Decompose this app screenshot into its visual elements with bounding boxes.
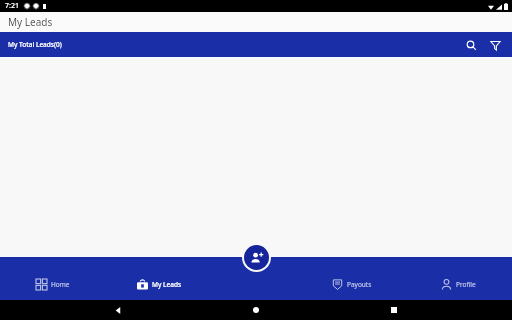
button[interactable]: Search: [462, 36, 480, 54]
button[interactable]: Recents: [386, 302, 402, 318]
staticText: My Leads: [8, 15, 53, 29]
button[interactable]: Home: [248, 302, 264, 318]
button[interactable]: Add lead: [244, 245, 269, 270]
staticText: Payouts: [347, 280, 372, 289]
button[interactable]: My Leads: [106, 257, 213, 300]
button[interactable]: Filter: [486, 36, 504, 54]
button[interactable]: Profile: [405, 257, 512, 300]
button[interactable]: Back: [110, 302, 126, 318]
staticText: Home: [51, 280, 70, 289]
staticText: 7:21: [5, 1, 19, 11]
staticText: My Leads: [152, 280, 182, 289]
button[interactable]: Payouts: [298, 257, 405, 300]
staticText: Profile: [456, 280, 476, 289]
staticText: My Total Leads(0): [8, 40, 62, 49]
button[interactable]: Home: [0, 257, 106, 300]
